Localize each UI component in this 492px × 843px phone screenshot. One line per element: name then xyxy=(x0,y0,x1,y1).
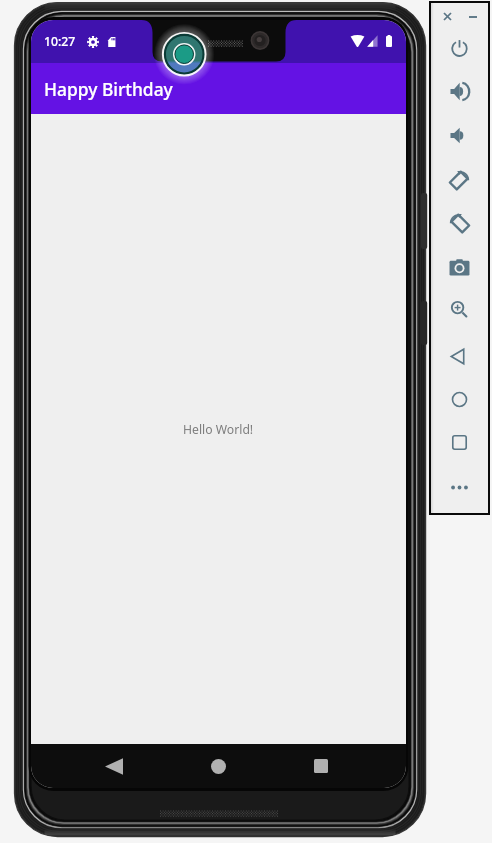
button[interactable]: Zoom xyxy=(441,292,477,326)
button[interactable]: Take screenshot xyxy=(441,250,477,284)
button[interactable]: Happy Birthday xyxy=(31,63,406,114)
button[interactable]: Back xyxy=(441,339,477,373)
button[interactable]: Overview xyxy=(441,425,477,459)
button[interactable]: Home xyxy=(441,382,477,416)
button[interactable]: Minimize xyxy=(462,6,483,27)
button[interactable]: More xyxy=(441,470,477,504)
button[interactable]: Back xyxy=(92,744,136,788)
staticText: 10:27 xyxy=(44,33,76,50)
staticText: Hello World! xyxy=(183,421,254,438)
button[interactable]: Rotate left xyxy=(441,162,477,196)
button[interactable]: Recent apps xyxy=(299,744,343,788)
button[interactable]: Power xyxy=(441,31,477,65)
button[interactable]: Volume down xyxy=(441,118,477,152)
button[interactable]: Home xyxy=(196,744,240,788)
button[interactable]: Rotate right xyxy=(441,205,477,239)
staticText: Happy Birthday xyxy=(44,77,173,101)
button[interactable]: Close xyxy=(437,6,458,27)
button[interactable]: Volume up xyxy=(441,74,477,108)
